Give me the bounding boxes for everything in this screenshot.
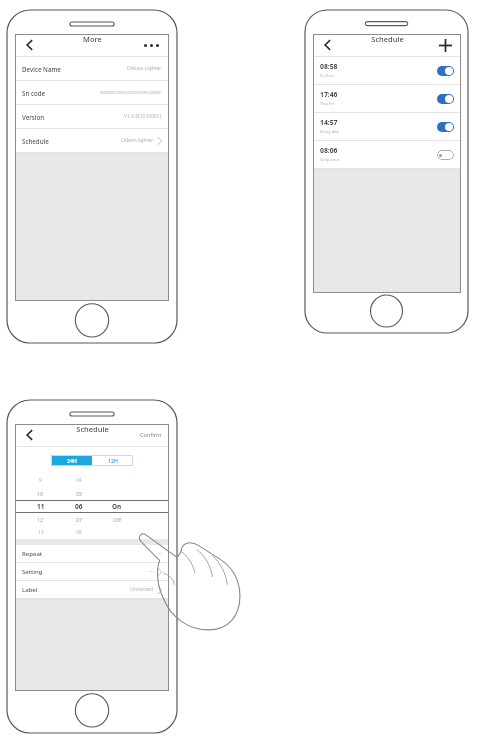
staticText: Sn code bbox=[22, 89, 46, 97]
staticText: 17:46 bbox=[320, 90, 338, 99]
button[interactable]: 08:58 bbox=[313, 57, 461, 84]
button[interactable]: 17:46 bbox=[313, 85, 461, 112]
button[interactable]: Alarm off bbox=[437, 150, 454, 160]
staticText: Fri,Sun. bbox=[320, 73, 335, 79]
button[interactable]: 11 bbox=[15, 500, 169, 513]
button[interactable]: Schedule bbox=[15, 129, 169, 152]
button[interactable]: Device Name bbox=[15, 57, 169, 80]
button[interactable]: More options bbox=[141, 41, 162, 50]
button[interactable]: 9 bbox=[15, 474, 169, 487]
staticText: Off bbox=[113, 516, 121, 523]
button[interactable]: 10 bbox=[15, 487, 169, 500]
staticText: 08 bbox=[76, 529, 82, 536]
staticText: --- bbox=[149, 568, 154, 575]
button[interactable]: Back bbox=[22, 37, 38, 53]
button[interactable]: Version bbox=[15, 105, 169, 128]
staticText: Deluxe Lighter bbox=[127, 65, 162, 72]
staticText: 13 bbox=[38, 529, 44, 536]
button[interactable]: Alarm on bbox=[437, 122, 454, 132]
staticText: 06 bbox=[75, 502, 83, 511]
button[interactable]: 08:06 bbox=[313, 141, 461, 168]
staticText: 08:58 bbox=[320, 62, 338, 71]
staticText: Schedule bbox=[371, 34, 404, 44]
staticText: On bbox=[112, 502, 122, 511]
button[interactable]: Back bbox=[320, 37, 336, 53]
button[interactable]: Back bbox=[22, 427, 38, 443]
staticText: --- bbox=[157, 550, 162, 557]
button[interactable]: Alarm on bbox=[437, 94, 454, 104]
staticText: Only once bbox=[320, 157, 340, 163]
button[interactable]: 24H bbox=[51, 455, 92, 466]
button[interactable]: 12 bbox=[15, 513, 169, 526]
staticText: Odwm lighter bbox=[121, 137, 154, 144]
button[interactable]: Label bbox=[15, 581, 169, 598]
staticText: Schedule bbox=[22, 137, 49, 145]
staticText: Every day bbox=[320, 129, 339, 135]
staticText: Confirm bbox=[140, 431, 162, 439]
staticText: 00000EFC00000QT000004HFSCAF000C bbox=[100, 90, 162, 95]
button[interactable]: Setting bbox=[15, 563, 169, 580]
staticText: 08:06 bbox=[320, 146, 338, 155]
button[interactable]: 13 bbox=[15, 526, 169, 539]
staticText: V1.0.0(1010001) bbox=[124, 113, 162, 120]
staticText: 24H bbox=[67, 457, 77, 464]
staticText: Version bbox=[22, 113, 45, 121]
staticText: Device Name bbox=[22, 65, 61, 73]
button[interactable]: Sn code bbox=[15, 81, 169, 104]
staticText: Label bbox=[22, 586, 38, 594]
button[interactable]: 12H bbox=[92, 455, 133, 466]
staticText: 11 bbox=[37, 502, 45, 511]
staticText: Repeat bbox=[22, 550, 43, 558]
button[interactable]: Repeat bbox=[15, 545, 169, 562]
staticText: Setting bbox=[22, 568, 43, 576]
staticText: 05 bbox=[76, 490, 83, 497]
staticText: More bbox=[83, 34, 102, 44]
button[interactable]: Add schedule bbox=[436, 36, 454, 54]
button[interactable]: Alarm on bbox=[437, 66, 454, 76]
staticText: 10 bbox=[37, 490, 44, 497]
staticText: 07 bbox=[76, 516, 83, 523]
button[interactable]: 14:57 bbox=[313, 113, 461, 140]
staticText: 14:57 bbox=[320, 118, 338, 127]
staticText: 12 bbox=[37, 516, 44, 523]
staticText: Thu,Fri bbox=[320, 101, 334, 107]
staticText: 12H bbox=[108, 457, 118, 464]
staticText: Unnamed bbox=[130, 586, 154, 593]
button[interactable]: Confirm bbox=[133, 427, 169, 443]
staticText: 9 bbox=[39, 477, 42, 484]
staticText: Schedule bbox=[76, 424, 109, 434]
staticText: 04 bbox=[76, 477, 82, 484]
